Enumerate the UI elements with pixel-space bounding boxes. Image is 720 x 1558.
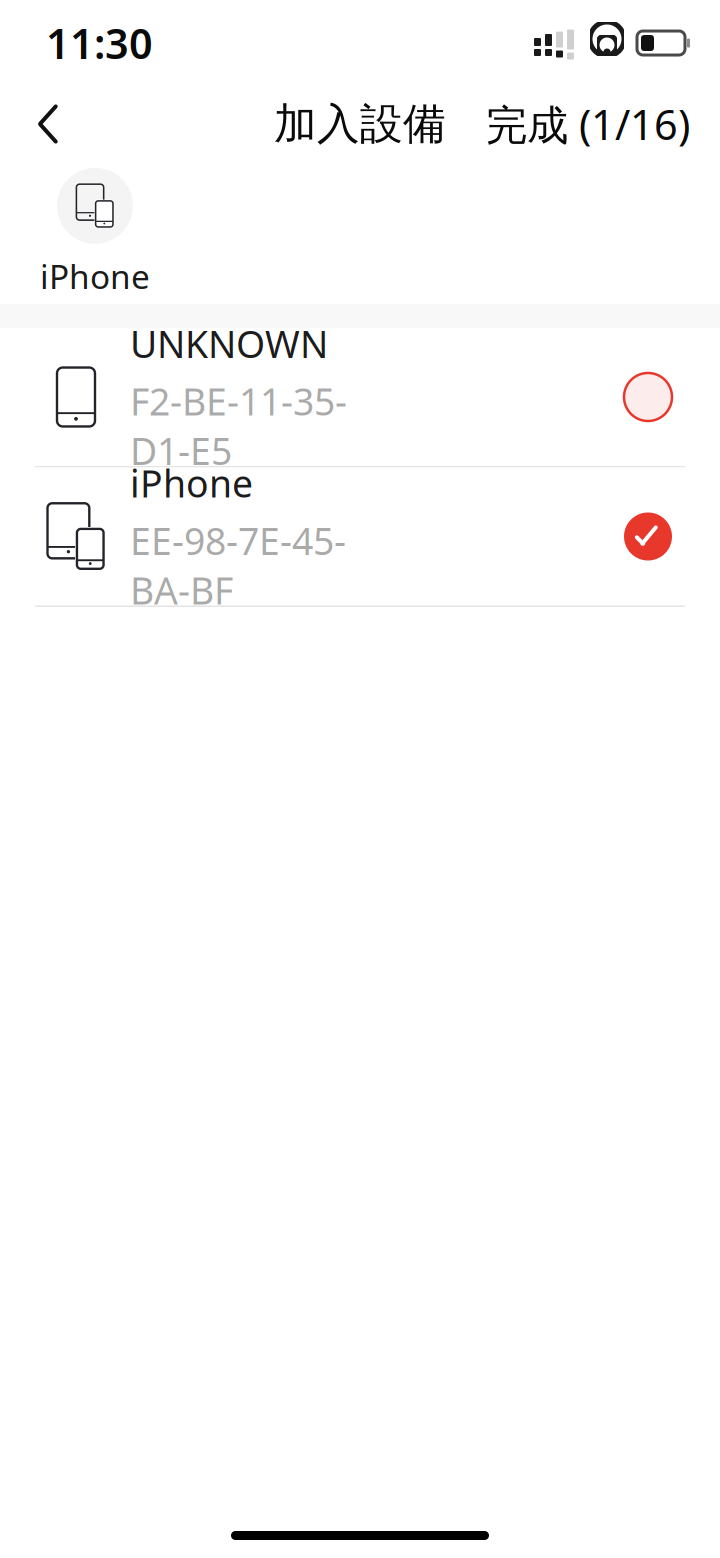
staticText: 11:30 (46, 16, 153, 70)
staticText: UNKNOWN (130, 319, 328, 368)
staticText: 完成 (1/16) (486, 97, 690, 151)
button[interactable]: UNKNOWN (0, 328, 720, 466)
button[interactable]: iPhone (35, 168, 155, 298)
staticText: 加入設備 (274, 98, 446, 150)
staticText: iPhone (130, 458, 253, 508)
button[interactable]: iPhone (0, 467, 720, 605)
staticText: F2-BE-11-35-D1-E5 (130, 376, 347, 475)
staticText: iPhone (40, 254, 150, 298)
staticText: EE-98-7E-45-BA-BF (130, 516, 346, 615)
button[interactable]: Back (12, 88, 84, 160)
button[interactable]: 完成 (1/16) (480, 85, 696, 163)
